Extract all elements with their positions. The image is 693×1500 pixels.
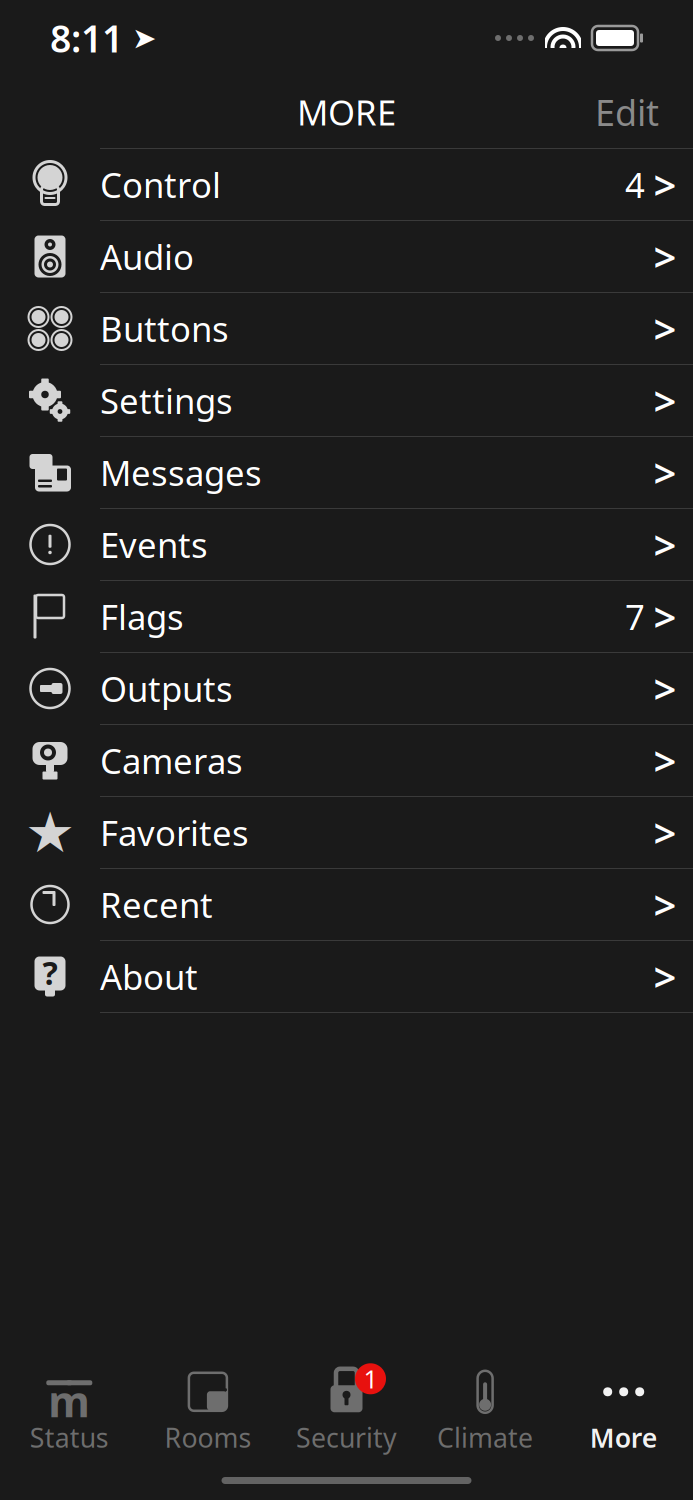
button[interactable]: More [554, 1367, 693, 1455]
staticText: > [653, 230, 676, 283]
staticText: > [653, 374, 676, 427]
button[interactable]: Rooms [139, 1367, 277, 1455]
button[interactable]: Climate [416, 1367, 554, 1455]
staticText: 8:11 [50, 13, 123, 63]
staticText: Security [296, 1420, 397, 1455]
button[interactable]: Events [0, 509, 693, 581]
staticText: Messages [100, 449, 262, 495]
staticText: Edit [595, 88, 659, 136]
staticText: ? [42, 951, 57, 994]
staticText: 1 [363, 1362, 377, 1396]
button[interactable]: m [0, 1367, 139, 1455]
staticText: MORE [297, 89, 396, 135]
button[interactable]: Settings [0, 365, 693, 437]
staticText: About [100, 953, 198, 999]
button[interactable]: Buttons [0, 293, 693, 365]
staticText: Climate [437, 1420, 533, 1455]
staticText: Flags [100, 593, 184, 639]
staticText: Cameras [100, 737, 243, 783]
staticText: ➤ [132, 21, 157, 55]
staticText: Buttons [100, 305, 229, 351]
staticText: > [653, 662, 676, 715]
button[interactable]: Messages [0, 437, 693, 509]
button[interactable]: Control [0, 149, 693, 221]
button[interactable]: Flags [0, 581, 693, 653]
staticText: > [653, 734, 676, 787]
button[interactable]: Edit [575, 78, 679, 146]
button[interactable]: ★ [0, 797, 693, 869]
button[interactable]: Recent [0, 869, 693, 941]
button[interactable]: Audio [0, 221, 693, 293]
staticText: 4 [625, 161, 645, 207]
staticText: > [653, 590, 676, 643]
staticText: > [653, 302, 676, 355]
button[interactable]: Cameras [0, 725, 693, 797]
staticText: Rooms [164, 1420, 251, 1455]
staticText: > [653, 950, 676, 1003]
staticText: > [653, 446, 676, 499]
staticText: More [590, 1420, 658, 1455]
staticText: Audio [100, 233, 194, 279]
button[interactable]: ? [0, 941, 693, 1013]
staticText: m [48, 1372, 90, 1429]
staticText: > [653, 806, 676, 859]
staticText: 7 [625, 593, 645, 639]
staticText: Events [100, 521, 208, 567]
staticText: > [653, 518, 676, 571]
staticText: > [653, 158, 676, 211]
staticText: Control [100, 161, 221, 207]
staticText: > [653, 878, 676, 931]
staticText: Recent [100, 881, 213, 927]
staticText: Status [30, 1420, 109, 1455]
staticText: Settings [100, 377, 233, 423]
staticText: Outputs [100, 665, 233, 711]
staticText: Favorites [100, 809, 249, 855]
staticText: ★ [25, 801, 75, 864]
button[interactable]: 1 [277, 1367, 416, 1455]
button[interactable]: Outputs [0, 653, 693, 725]
